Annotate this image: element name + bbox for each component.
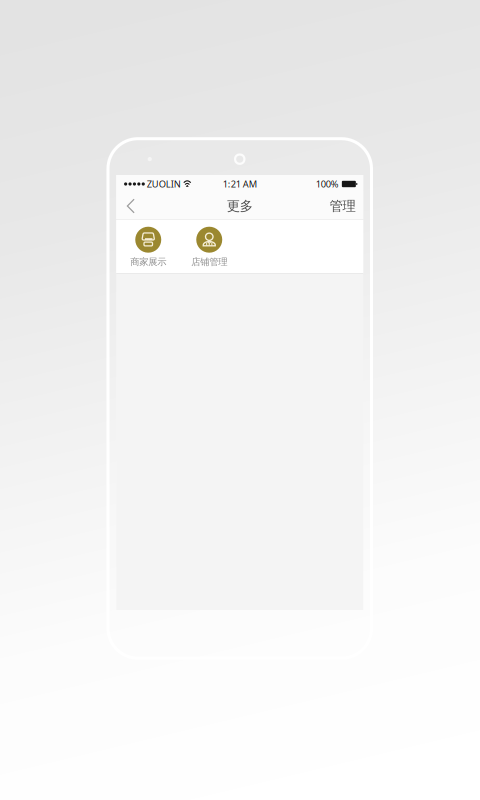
staticText: 店铺管理 <box>191 256 227 268</box>
button[interactable]: 管理 <box>326 193 359 219</box>
staticText: 更多 <box>227 198 253 214</box>
staticText: 商家展示 <box>130 256 166 268</box>
button[interactable]: Back <box>120 193 142 219</box>
staticText: 管理 <box>329 198 355 214</box>
button[interactable]: 商家展示 <box>118 227 179 268</box>
staticText: ZUOLIN <box>147 178 181 190</box>
button[interactable]: 店铺管理 <box>179 227 240 268</box>
staticText: 100% <box>316 178 339 190</box>
staticText: 1:21 AM <box>223 178 257 190</box>
